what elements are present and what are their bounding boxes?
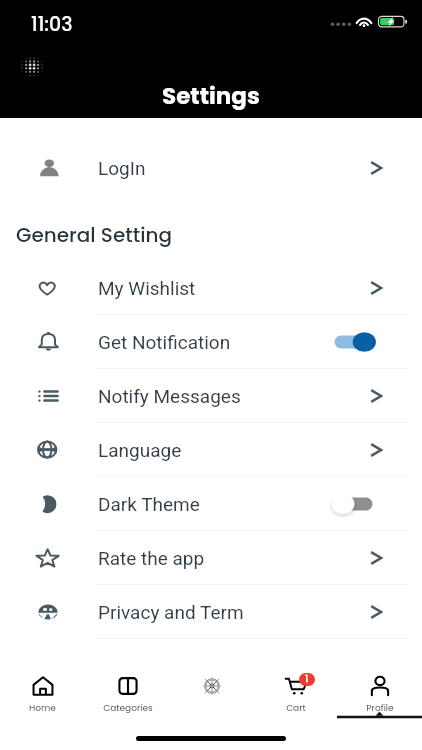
- button[interactable]: Get Notification: [0, 315, 422, 369]
- button[interactable]: LogIn: [0, 141, 422, 195]
- staticText: Cart: [286, 702, 306, 715]
- button[interactable]: 1: [254, 645, 338, 717]
- button[interactable]: Dark Theme: [0, 477, 422, 531]
- staticText: Categories: [103, 702, 153, 715]
- button[interactable]: Home: [0, 645, 85, 717]
- staticText: Rate the app: [98, 547, 205, 569]
- staticText: Home: [29, 702, 56, 715]
- button[interactable]: Language: [0, 423, 422, 477]
- button[interactable]: Categories: [85, 645, 170, 717]
- staticText: My Wishlist: [98, 277, 196, 299]
- button[interactable]: My Wishlist: [0, 261, 422, 315]
- staticText: Notify Messages: [98, 385, 241, 407]
- button[interactable]: Menu: [20, 55, 44, 78]
- button[interactable]: Profile: [338, 645, 422, 717]
- button[interactable]: Toggle on: [330, 328, 380, 356]
- staticText: Profile: [366, 702, 394, 715]
- staticText: 11:03: [31, 11, 73, 38]
- button[interactable]: Privacy and Term: [0, 585, 422, 639]
- button[interactable]: Explore: [170, 645, 254, 717]
- staticText: LogIn: [98, 157, 146, 179]
- button[interactable]: Notify Messages: [0, 369, 422, 423]
- staticText: Privacy and Term: [98, 601, 244, 623]
- staticText: General Setting: [16, 221, 172, 249]
- button[interactable]: Rate the app: [0, 531, 422, 585]
- staticText: Settings: [162, 80, 260, 112]
- staticText: Dark Theme: [98, 493, 200, 515]
- button[interactable]: Toggle off: [330, 490, 380, 518]
- staticText: Language: [98, 439, 182, 461]
- staticText: Get Notification: [98, 331, 231, 353]
- staticText: 1: [305, 673, 309, 686]
